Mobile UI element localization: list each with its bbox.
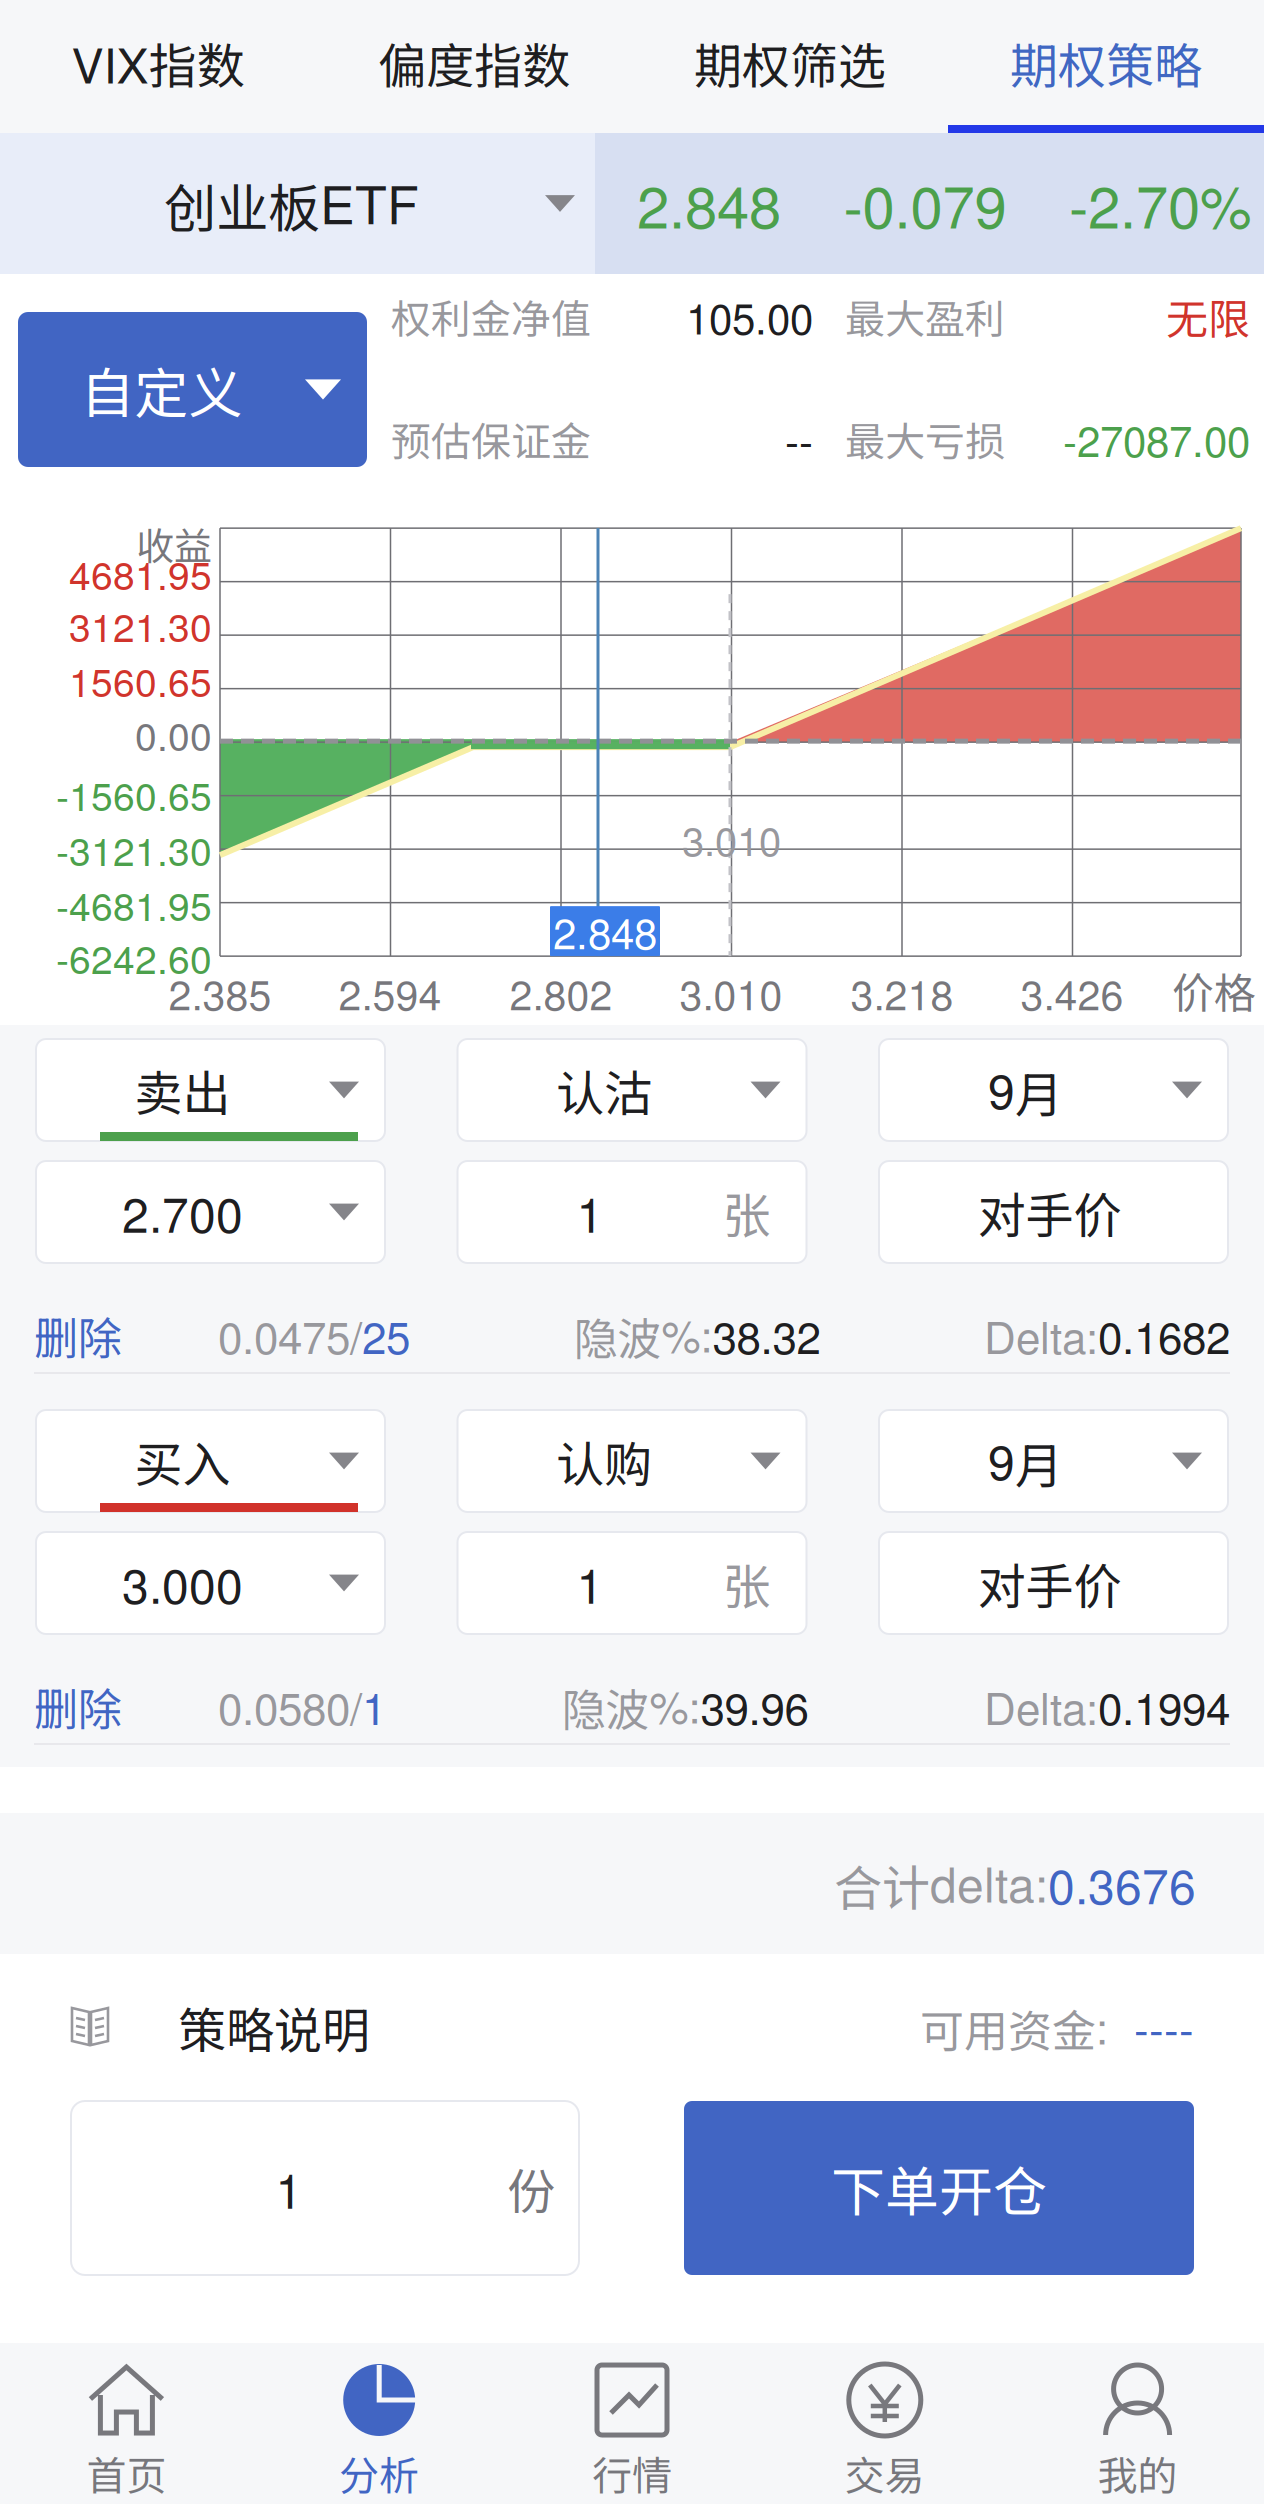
staticText: 首页: [86, 2444, 166, 2502]
button[interactable]: 下单开仓: [684, 2101, 1194, 2275]
staticText: --: [785, 409, 813, 469]
staticText: 预估保证金: [391, 410, 591, 468]
button[interactable]: 策略说明: [68, 2000, 370, 2054]
staticText: 最大盈利: [845, 287, 1005, 345]
button[interactable]: 9月: [879, 1039, 1228, 1141]
staticText: -3121.30: [56, 821, 212, 877]
staticText: 0.3676: [1048, 1849, 1196, 1918]
button[interactable]: 买入: [36, 1410, 385, 1512]
button[interactable]: 交易: [758, 2343, 1011, 2504]
staticText: 张: [722, 1548, 770, 1618]
button[interactable]: 分析: [253, 2343, 506, 2504]
button[interactable]: 卖出: [36, 1039, 385, 1141]
button[interactable]: 1: [457, 1532, 806, 1634]
staticText: 39.96: [700, 1674, 808, 1737]
staticText: 2.594: [338, 963, 441, 1022]
button[interactable]: 2.700: [36, 1161, 385, 1263]
staticText: 3121.30: [69, 597, 212, 653]
staticText: 分析: [339, 2444, 419, 2502]
button[interactable]: 对手价: [879, 1161, 1228, 1263]
staticText: -6242.60: [56, 929, 212, 985]
staticText: 创业板ETF: [164, 164, 419, 242]
button[interactable]: 删除: [34, 1674, 130, 1738]
staticText: 1560.65: [69, 652, 212, 708]
staticText: 0.00: [135, 706, 212, 762]
staticText: /: [350, 1303, 362, 1366]
staticText: 对手价: [977, 1177, 1121, 1247]
button[interactable]: 1: [457, 1161, 806, 1263]
staticText: 张: [722, 1177, 770, 1247]
button[interactable]: 行情: [506, 2343, 758, 2504]
staticText: 隐波%:: [573, 1302, 712, 1368]
staticText: -0.079: [843, 162, 1006, 245]
staticText: 3.218: [850, 963, 953, 1022]
staticText: 合计delta:: [834, 1847, 1048, 1919]
staticText: 2.848: [553, 901, 657, 961]
button[interactable]: 首页: [0, 2343, 253, 2504]
staticText: 偏度指数: [378, 28, 570, 97]
staticText: 3.000: [122, 1549, 243, 1617]
staticText: 自定义: [80, 350, 242, 429]
staticText: 份: [507, 2153, 555, 2223]
staticText: 1: [275, 2154, 302, 2222]
button[interactable]: 期权策略: [948, 0, 1264, 133]
staticText: 3.010: [682, 810, 781, 867]
staticText: 行情: [592, 2444, 672, 2502]
button[interactable]: 自定义: [18, 312, 367, 467]
button[interactable]: 对手价: [879, 1532, 1228, 1634]
staticText: 25: [362, 1303, 410, 1366]
staticText: 0.0475: [218, 1303, 350, 1366]
staticText: 0.1994: [1098, 1674, 1230, 1737]
button[interactable]: 9月: [879, 1410, 1228, 1512]
staticText: -27087.00: [1063, 409, 1250, 469]
staticText: 可用资金:: [920, 1994, 1108, 2060]
button[interactable]: 认沽: [457, 1039, 806, 1141]
staticText: 2.700: [122, 1178, 243, 1246]
staticText: 1: [362, 1674, 386, 1737]
staticText: 3.010: [679, 963, 782, 1022]
button[interactable]: 偏度指数: [316, 0, 632, 133]
staticText: ----: [1134, 1995, 1194, 2058]
staticText: 删除: [34, 1674, 122, 1738]
staticText: 期权策略: [1010, 28, 1202, 97]
staticText: 买入: [134, 1426, 230, 1496]
staticText: VIX指数: [71, 28, 244, 97]
button[interactable]: 期权筛选: [632, 0, 948, 133]
staticText: 2.385: [168, 963, 271, 1022]
staticText: 删除: [34, 1303, 122, 1367]
staticText: 策略说明: [178, 1992, 370, 2062]
staticText: 收益: [136, 516, 212, 571]
staticText: 105.00: [686, 286, 813, 346]
button[interactable]: 创业板ETF: [0, 133, 595, 274]
staticText: 我的: [1098, 2444, 1178, 2502]
button[interactable]: 1: [71, 2101, 579, 2275]
staticText: 交易: [845, 2444, 925, 2502]
staticText: 38.32: [712, 1303, 820, 1366]
button[interactable]: 删除: [34, 1303, 130, 1367]
staticText: 0.0580: [218, 1674, 350, 1737]
staticText: 隐波%:: [561, 1673, 700, 1739]
staticText: 价格: [1172, 960, 1256, 1021]
button[interactable]: 认购: [457, 1410, 806, 1512]
staticText: 0.1682: [1098, 1303, 1230, 1366]
staticText: 2.848: [637, 162, 781, 245]
staticText: 对手价: [977, 1548, 1121, 1618]
staticText: 权利金净值: [391, 287, 591, 345]
staticText: /: [350, 1674, 362, 1737]
staticText: 期权筛选: [694, 28, 886, 97]
staticText: -4681.95: [56, 876, 212, 932]
staticText: 最大亏损: [845, 410, 1005, 468]
staticText: 认沽: [556, 1055, 652, 1125]
button[interactable]: 3.000: [36, 1532, 385, 1634]
staticText: -2.70%: [1069, 162, 1252, 245]
staticText: 无限: [1166, 286, 1250, 347]
staticText: 认购: [556, 1426, 652, 1496]
button[interactable]: VIX指数: [0, 0, 316, 133]
button[interactable]: 我的: [1011, 2343, 1264, 2504]
staticText: 4681.95: [69, 545, 212, 601]
staticText: Delta:: [984, 1303, 1098, 1366]
staticText: 9月: [988, 1054, 1063, 1126]
staticText: -1560.65: [56, 766, 212, 822]
staticText: 3.426: [1020, 963, 1123, 1022]
staticText: 下单开仓: [831, 2149, 1047, 2227]
